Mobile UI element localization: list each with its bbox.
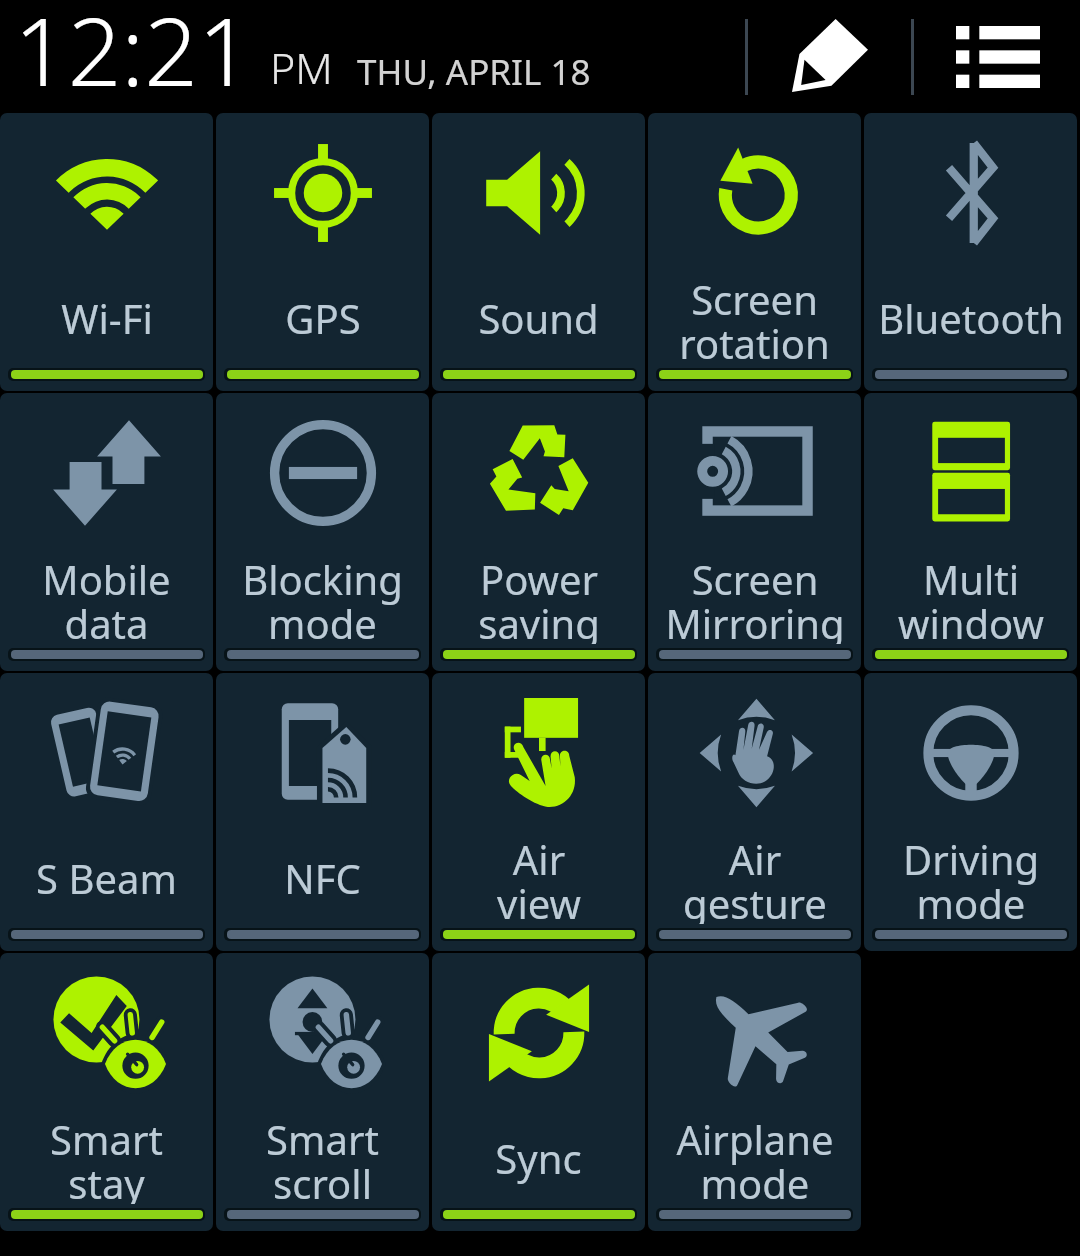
staticText: Power saving — [478, 552, 600, 644]
staticText: Blocking mode — [242, 552, 403, 644]
button[interactable]: Show list — [938, 0, 1058, 113]
staticText: PM — [270, 38, 333, 97]
button[interactable]: Screen Mirroring — [648, 393, 861, 671]
button[interactable]: S Beam — [0, 673, 213, 951]
staticText: Screen Mirroring — [665, 552, 845, 644]
button[interactable]: Airplane mode — [648, 953, 861, 1231]
staticText: Wi-Fi — [61, 291, 153, 345]
button[interactable]: Sound — [432, 113, 645, 391]
button[interactable]: Smart stay — [0, 953, 213, 1231]
staticText: Air gesture — [683, 832, 827, 924]
staticText: Mobile data — [42, 552, 171, 644]
staticText: Sync — [495, 1131, 582, 1185]
staticText: THU, APRIL 18 — [357, 48, 591, 96]
button[interactable]: Smart scroll — [216, 953, 429, 1231]
staticText: Bluetooth — [878, 291, 1064, 345]
button[interactable]: GPS — [216, 113, 429, 391]
staticText: NFC — [284, 851, 361, 905]
staticText: 12:21 — [14, 0, 252, 99]
staticText: GPS — [285, 291, 361, 345]
button[interactable]: Blocking mode — [216, 393, 429, 671]
button[interactable]: Edit quick settings — [770, 0, 890, 113]
button[interactable]: Mobile data — [0, 393, 213, 671]
button[interactable]: Screen rotation — [648, 113, 861, 391]
staticText: Airplane mode — [676, 1112, 834, 1204]
staticText: Driving mode — [903, 832, 1039, 924]
button[interactable]: Multi window — [864, 393, 1077, 671]
button[interactable]: NFC — [216, 673, 429, 951]
staticText: Smart scroll — [266, 1112, 379, 1204]
button[interactable]: Power saving — [432, 393, 645, 671]
staticText: S Beam — [36, 851, 177, 905]
staticText: Sound — [478, 291, 599, 345]
staticText: Smart stay — [50, 1112, 163, 1204]
button[interactable]: Sync — [432, 953, 645, 1231]
button[interactable]: Wi-Fi — [0, 113, 213, 391]
button[interactable]: Air gesture — [648, 673, 861, 951]
staticText: Screen rotation — [679, 272, 830, 364]
staticText: Multi window — [898, 552, 1044, 644]
staticText: Air view — [497, 832, 581, 924]
button[interactable]: Bluetooth — [864, 113, 1077, 391]
button[interactable]: Driving mode — [864, 673, 1077, 951]
button[interactable]: Air view — [432, 673, 645, 951]
